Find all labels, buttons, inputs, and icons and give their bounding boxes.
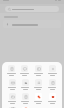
button[interactable]: Share target	[47, 65, 58, 76]
button[interactable]	[5, 6, 59, 12]
button[interactable]: Share target	[20, 107, 30, 108]
button[interactable]: Share target	[19, 65, 30, 76]
button[interactable]: Share target	[33, 93, 43, 104]
button[interactable]: Share target	[6, 65, 17, 76]
button[interactable]	[3, 20, 61, 28]
button[interactable]: Share target	[20, 79, 30, 90]
button[interactable]: Share target	[33, 79, 43, 90]
button[interactable]: Share target	[47, 79, 57, 90]
button[interactable]: Share target	[20, 93, 30, 104]
button[interactable]: Share target	[7, 93, 17, 104]
button[interactable]: Share target	[7, 79, 17, 90]
button[interactable]: Share target	[33, 65, 44, 76]
button[interactable]: Share target	[7, 107, 17, 108]
button[interactable]: Share target	[47, 93, 57, 104]
